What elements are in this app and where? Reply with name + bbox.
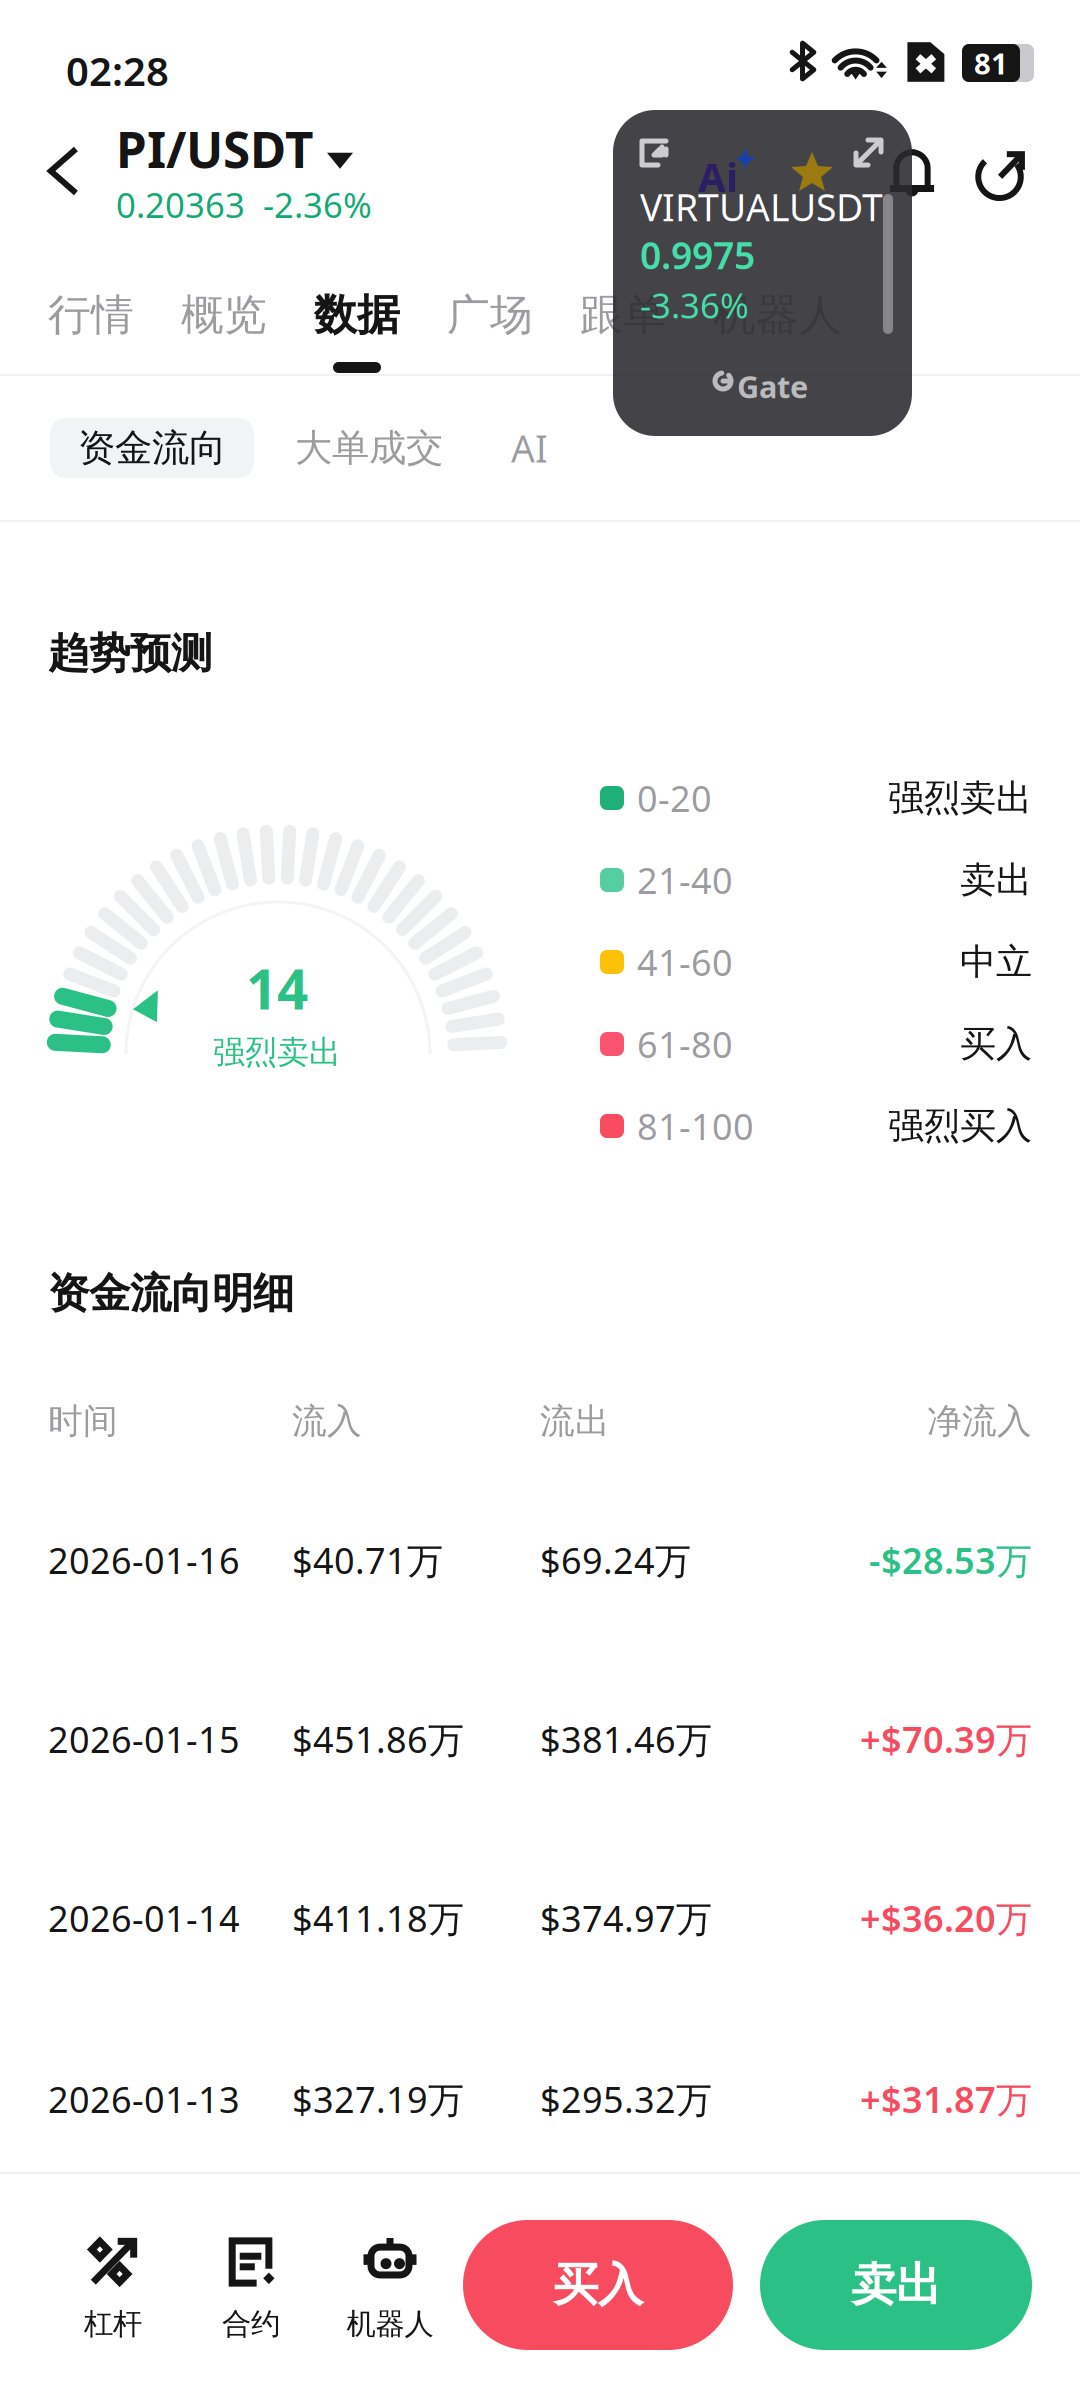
staticText: $327.19万 — [292, 2075, 464, 2123]
staticText: 概览 — [181, 289, 267, 341]
staticText: 买入 — [553, 2257, 643, 2313]
staticText: +$70.39万 — [860, 1715, 1032, 1763]
staticText: 净流入 — [927, 1400, 1032, 1443]
staticText: 0-20 — [637, 774, 712, 822]
staticText: 广场 — [447, 289, 533, 341]
staticText: 14 — [246, 952, 308, 1025]
staticText: 机器人 — [713, 289, 842, 341]
staticText: 数据 — [314, 289, 400, 341]
staticText: VIRTUALUSDT — [640, 182, 883, 232]
staticText: 机器人 — [346, 2306, 433, 2342]
staticText: Ai — [698, 150, 738, 203]
button[interactable]: 大单成交 — [295, 418, 443, 478]
button[interactable]: 概览 — [181, 293, 267, 373]
staticText: $451.86万 — [292, 1715, 464, 1763]
staticText: $69.24万 — [540, 1536, 691, 1584]
button[interactable]: 买入 — [463, 2220, 733, 2350]
staticText: 卖出 — [851, 2257, 941, 2313]
staticText: Gate — [737, 366, 808, 407]
button[interactable]: PI/USDT — [116, 116, 372, 227]
staticText: 81 — [974, 43, 1008, 82]
staticText: $40.71万 — [292, 1536, 443, 1584]
staticText: 2026-01-16 — [48, 1536, 240, 1584]
button[interactable]: 合约 — [191, 2238, 311, 2342]
staticText: 41-60 — [637, 938, 733, 986]
staticText: 时间 — [48, 1400, 118, 1443]
staticText: 流出 — [540, 1400, 610, 1443]
staticText: 2026-01-15 — [48, 1715, 240, 1763]
staticText: 强烈卖出 — [888, 776, 1032, 820]
button[interactable]: 资金流向 — [50, 418, 254, 478]
button[interactable]: AI — [511, 418, 548, 478]
button[interactable]: 广场 — [447, 293, 533, 373]
staticText: 大单成交 — [295, 425, 443, 471]
staticText: 2026-01-13 — [48, 2075, 240, 2123]
button[interactable]: 机器人 — [330, 2238, 450, 2342]
staticText: $295.32万 — [540, 2075, 712, 2123]
staticText: -3.36% — [640, 282, 749, 328]
button[interactable]: 杠杆 — [53, 2238, 173, 2342]
staticText: 61-80 — [637, 1020, 733, 1068]
staticText: 跟单 — [580, 289, 666, 341]
staticText: 21-40 — [637, 856, 733, 904]
staticText: 0.20363 -2.36% — [116, 181, 372, 227]
staticText: 02:28 — [66, 44, 169, 97]
button[interactable]: Back — [46, 146, 80, 196]
staticText: -$28.53万 — [869, 1536, 1032, 1584]
staticText: +$31.87万 — [860, 2075, 1032, 2123]
button[interactable]: 卖出 — [760, 2220, 1032, 2350]
staticText: 卖出 — [960, 858, 1032, 902]
staticText: PI/USDT — [116, 116, 313, 181]
button[interactable]: Share — [976, 142, 1032, 200]
staticText: 资金流向 — [78, 425, 226, 471]
staticText: 资金流向明细 — [48, 1268, 294, 1319]
staticText: $411.18万 — [292, 1894, 464, 1942]
staticText: $381.46万 — [540, 1715, 712, 1763]
staticText: 合约 — [222, 2306, 280, 2342]
staticText: 杠杆 — [84, 2306, 142, 2342]
staticText: $374.97万 — [540, 1894, 712, 1942]
button[interactable]: 行情 — [48, 293, 134, 373]
button[interactable]: 数据 — [314, 293, 400, 373]
staticText: 流入 — [292, 1400, 362, 1443]
staticText: +$36.20万 — [860, 1894, 1032, 1942]
staticText: 强烈买入 — [888, 1104, 1032, 1148]
staticText: 2026-01-14 — [48, 1894, 240, 1942]
staticText: 强烈卖出 — [213, 1033, 341, 1072]
button[interactable]: Price alert — [889, 148, 935, 198]
staticText: 81-100 — [637, 1102, 754, 1150]
button[interactable]: 跟单 — [580, 293, 666, 373]
button[interactable]: 机器人 — [713, 293, 842, 373]
staticText: 趋势预测 — [48, 628, 212, 679]
staticText: AI — [511, 423, 548, 473]
staticText: 中立 — [960, 940, 1032, 984]
staticText: 买入 — [960, 1022, 1032, 1066]
staticText: 0.9975 — [640, 230, 755, 280]
staticText: 行情 — [48, 289, 134, 341]
